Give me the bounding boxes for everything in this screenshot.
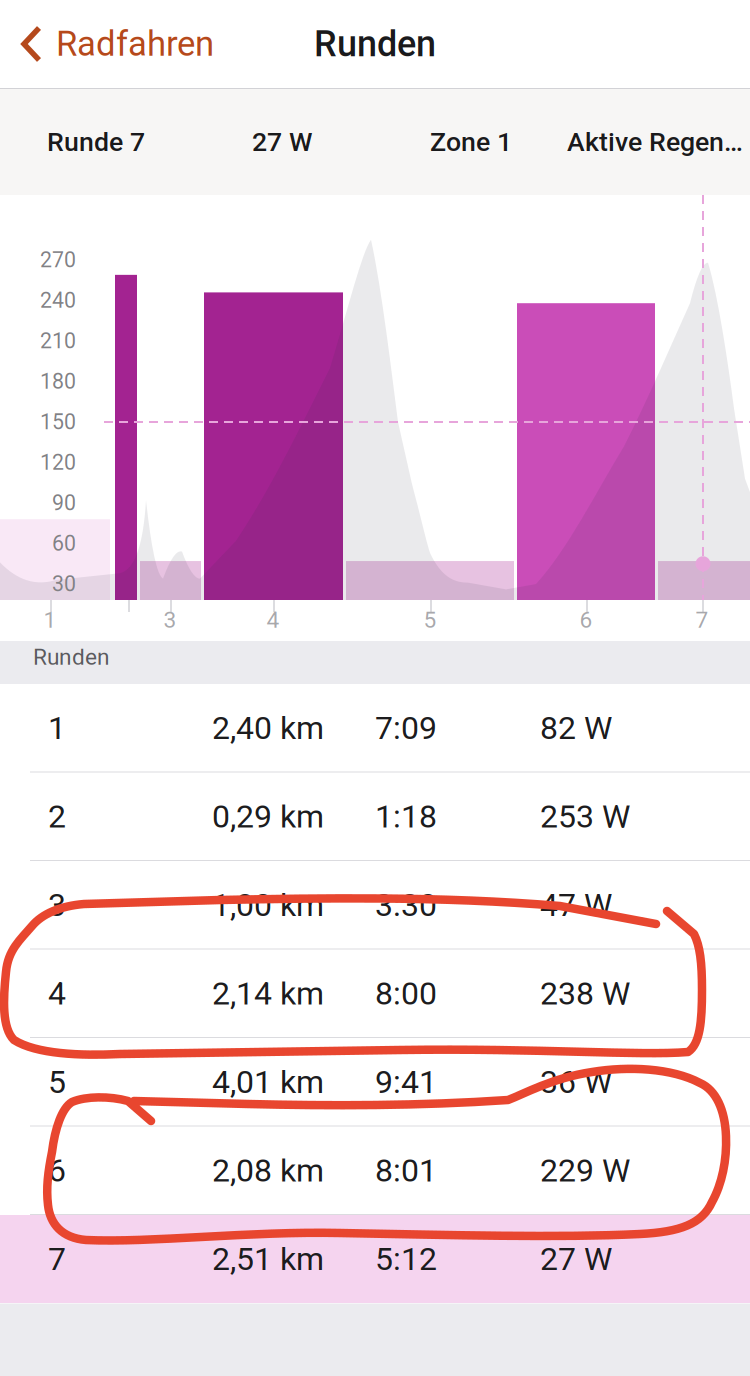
staticText: 60 bbox=[52, 531, 76, 556]
staticText: Runde 7 bbox=[47, 126, 145, 158]
staticText: 9:41 bbox=[375, 1063, 437, 1101]
staticText: Runden bbox=[33, 644, 110, 670]
button[interactable]: 3 bbox=[0, 861, 750, 949]
staticText: 1 bbox=[48, 709, 66, 747]
staticText: 27 W bbox=[252, 126, 312, 158]
staticText: 210 bbox=[40, 328, 76, 353]
button[interactable]: 2 bbox=[0, 772, 750, 860]
staticText: 150 bbox=[40, 409, 76, 434]
staticText: 1:18 bbox=[375, 798, 437, 835]
button[interactable]: 7 bbox=[0, 1215, 750, 1303]
staticText: 229 W bbox=[540, 1152, 630, 1189]
staticText: 0,29 km bbox=[212, 798, 324, 835]
button[interactable]: Radfahren bbox=[0, 0, 228, 88]
button[interactable]: 1 bbox=[0, 684, 750, 772]
staticText: 6 bbox=[48, 1152, 66, 1189]
staticText: 82 W bbox=[540, 709, 612, 747]
staticText: 4 bbox=[48, 975, 66, 1012]
staticText: 5:12 bbox=[375, 1240, 437, 1278]
staticText: 27 W bbox=[540, 1240, 612, 1278]
staticText: 2,51 km bbox=[212, 1240, 324, 1278]
staticText: 36 W bbox=[540, 1063, 612, 1101]
staticText: 4 bbox=[266, 607, 279, 633]
staticText: 3 bbox=[163, 607, 176, 633]
staticText: 7 bbox=[695, 607, 708, 633]
staticText: 1 bbox=[43, 607, 56, 633]
staticText: 240 bbox=[40, 288, 76, 313]
staticText: 1,00 km bbox=[212, 886, 324, 924]
staticText: 5 bbox=[48, 1063, 66, 1101]
staticText: 8:01 bbox=[375, 1152, 437, 1189]
staticText: Radfahren bbox=[56, 24, 214, 64]
staticText: 30 bbox=[52, 571, 76, 596]
staticText: Zone 1 bbox=[430, 126, 512, 158]
staticText: 3:30 bbox=[375, 886, 437, 924]
staticText: 8:00 bbox=[375, 975, 437, 1012]
staticText: 2 bbox=[48, 798, 66, 835]
staticText: 2,40 km bbox=[212, 709, 324, 747]
staticText: 3 bbox=[48, 886, 66, 924]
staticText: 180 bbox=[40, 369, 76, 394]
staticText: 4,01 km bbox=[212, 1063, 324, 1101]
staticText: 6 bbox=[579, 607, 592, 633]
button[interactable]: 4 bbox=[0, 949, 750, 1037]
staticText: 5 bbox=[423, 607, 436, 633]
staticText: 7:09 bbox=[375, 709, 437, 747]
staticText: 2,14 km bbox=[212, 975, 324, 1012]
button[interactable]: 6 bbox=[0, 1126, 750, 1214]
staticText: 2,08 km bbox=[212, 1152, 324, 1189]
staticText: 253 W bbox=[540, 798, 630, 835]
staticText: 7 bbox=[48, 1240, 66, 1278]
staticText: 120 bbox=[40, 450, 76, 475]
staticText: Runden bbox=[314, 23, 436, 65]
staticText: 270 bbox=[40, 247, 76, 272]
staticText: 90 bbox=[52, 490, 76, 515]
staticText: 47 W bbox=[540, 886, 612, 924]
staticText: Aktive Regen… bbox=[567, 126, 743, 158]
staticText: 238 W bbox=[540, 975, 630, 1012]
button[interactable]: 5 bbox=[0, 1038, 750, 1126]
